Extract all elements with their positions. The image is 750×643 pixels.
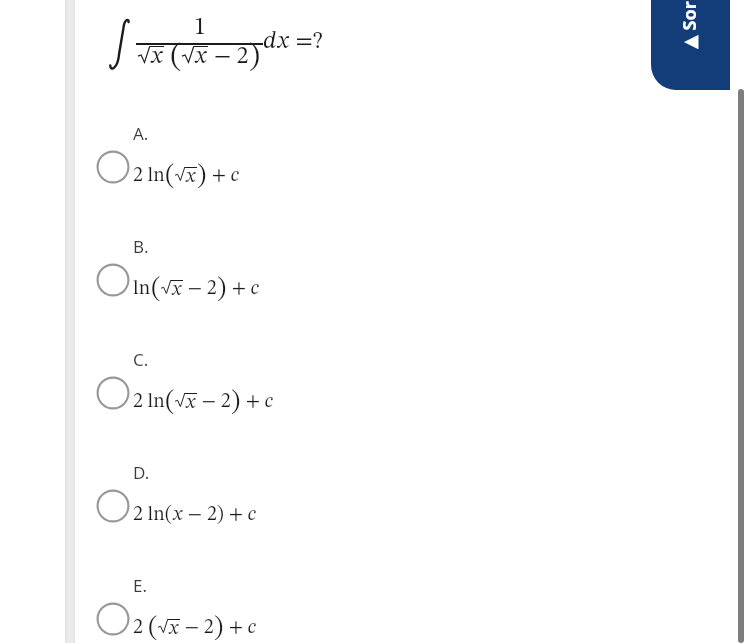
staticText: 𝑥 xyxy=(171,280,183,298)
staticText: ▲ Soru xyxy=(677,0,699,49)
staticText: ) xyxy=(197,163,207,189)
staticText: − 2 xyxy=(183,279,217,299)
staticText: 1 xyxy=(194,16,206,40)
staticText: 2 ln xyxy=(133,166,165,186)
staticText: + 𝑐 xyxy=(224,618,257,638)
staticText: ln xyxy=(133,279,151,299)
staticText: + 𝑐 xyxy=(227,279,260,299)
staticText: 𝑥 xyxy=(150,45,164,67)
staticText: B. xyxy=(133,235,149,258)
staticText: − 2 xyxy=(180,618,214,638)
staticText: + 𝑐 xyxy=(207,166,240,186)
staticText: − 2 xyxy=(197,392,231,412)
staticText: ( xyxy=(165,389,175,415)
staticText: D. xyxy=(133,461,150,484)
staticText: ) xyxy=(217,276,227,302)
button[interactable]: Soru xyxy=(651,0,730,90)
button[interactable]: E. xyxy=(96,577,257,636)
button[interactable]: B. xyxy=(96,238,260,297)
staticText: 2 ln(𝑥 − 2) + 𝑐 xyxy=(133,505,257,525)
staticText: ( xyxy=(165,163,175,189)
staticText: ( xyxy=(151,276,161,302)
staticText: ( xyxy=(170,41,182,73)
staticText: ) xyxy=(249,41,261,73)
staticText: 𝑑𝑥 =? xyxy=(263,30,323,54)
staticText: − 2 xyxy=(208,45,249,69)
staticText: ( xyxy=(148,615,158,641)
button[interactable]: C. xyxy=(96,351,274,410)
staticText: E. xyxy=(133,574,148,597)
staticText: 𝑥 xyxy=(168,619,180,637)
staticText: 2 ln xyxy=(133,392,165,412)
staticText: C. xyxy=(133,348,149,371)
staticText: A. xyxy=(133,122,149,145)
staticText: ) xyxy=(231,389,241,415)
staticText: 𝑥 xyxy=(194,45,208,67)
button[interactable]: A. xyxy=(96,125,240,184)
staticText: 𝑥 xyxy=(185,393,197,411)
staticText: 𝑥 xyxy=(185,167,197,185)
button[interactable]: D. xyxy=(96,464,257,523)
staticText: + 𝑐 xyxy=(241,392,274,412)
staticText: ) xyxy=(214,615,224,641)
staticText: 2 xyxy=(133,618,148,638)
